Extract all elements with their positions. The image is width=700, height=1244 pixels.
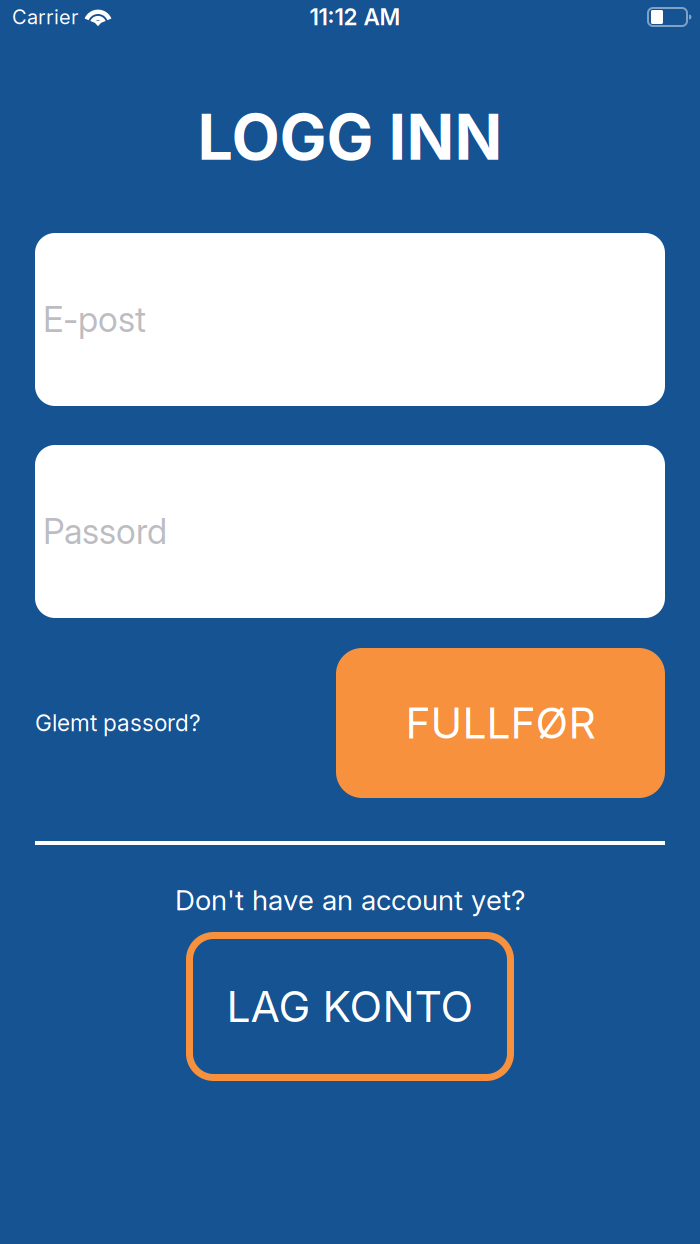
- staticText: FULLFØR: [405, 697, 595, 749]
- staticText: E-post: [43, 298, 146, 340]
- button[interactable]: Passord: [35, 445, 665, 618]
- staticText: LAG KONTO: [226, 981, 473, 1032]
- staticText: LOGG INN: [197, 99, 502, 175]
- staticText: Glemt passord?: [35, 709, 201, 737]
- staticText: Don't have an account yet?: [175, 883, 525, 917]
- button[interactable]: Glemt passord?: [35, 701, 201, 745]
- staticText: 11:12 AM: [309, 3, 400, 31]
- staticText: Passord: [43, 510, 167, 552]
- button[interactable]: E-post: [35, 233, 665, 406]
- button[interactable]: FULLFØR: [336, 648, 665, 798]
- button[interactable]: LAG KONTO: [186, 932, 514, 1081]
- staticText: Carrier: [12, 5, 78, 29]
